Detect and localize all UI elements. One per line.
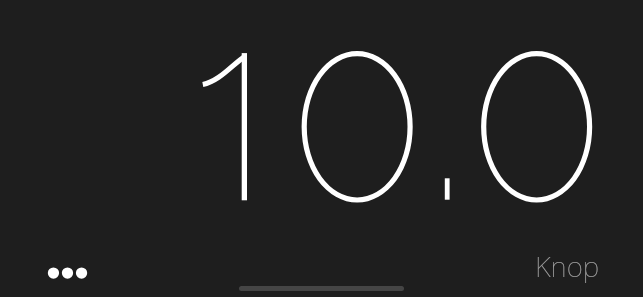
- button[interactable]: Knop: [519, 241, 615, 289]
- staticText: Knop: [535, 247, 600, 285]
- other: 10.0: [0, 0, 643, 297]
- button[interactable]: More options: [36, 255, 96, 291]
